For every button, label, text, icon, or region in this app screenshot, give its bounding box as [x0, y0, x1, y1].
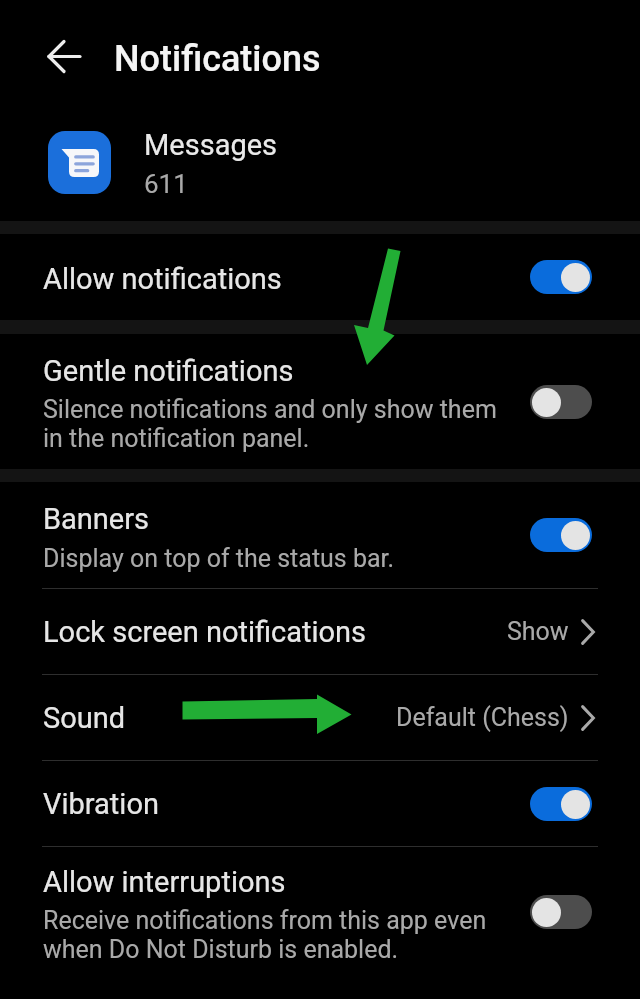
staticText: 611	[144, 169, 188, 199]
staticText: Notifications	[114, 38, 321, 80]
button[interactable]: Messages	[0, 115, 640, 221]
staticText: Messages	[144, 128, 278, 162]
button[interactable]: Vibration	[0, 761, 640, 846]
staticText: Sound	[43, 701, 396, 735]
staticText: Vibration	[43, 787, 530, 821]
staticText: Default (Chess)	[396, 703, 569, 732]
button[interactable]: Toggle on	[530, 518, 592, 552]
staticText: Allow notifications	[43, 262, 530, 296]
button[interactable]: Banners	[0, 482, 640, 588]
staticText: Banners	[43, 502, 150, 536]
staticText: Show	[507, 617, 569, 646]
button[interactable]: Toggle off	[530, 895, 592, 929]
staticText: Receive notifications from this app even…	[43, 906, 503, 964]
button[interactable]: Lock screen notifications	[0, 589, 640, 674]
staticText: Gentle notifications	[43, 354, 294, 388]
button[interactable]: Gentle notifications	[0, 334, 640, 469]
button[interactable]: Allow notifications	[0, 234, 640, 320]
button[interactable]: Back	[27, 34, 85, 79]
staticText: Display on top of the status bar.	[43, 544, 395, 573]
button[interactable]: Toggle off	[530, 385, 592, 419]
staticText: Silence notifications and only show them…	[43, 395, 503, 453]
button[interactable]: Toggle on	[530, 787, 592, 821]
button[interactable]: Toggle on	[530, 260, 592, 294]
button[interactable]: Sound	[0, 675, 640, 760]
button[interactable]: Allow interruptions	[0, 847, 640, 976]
staticText: Allow interruptions	[43, 865, 286, 899]
staticText: Lock screen notifications	[43, 615, 507, 649]
